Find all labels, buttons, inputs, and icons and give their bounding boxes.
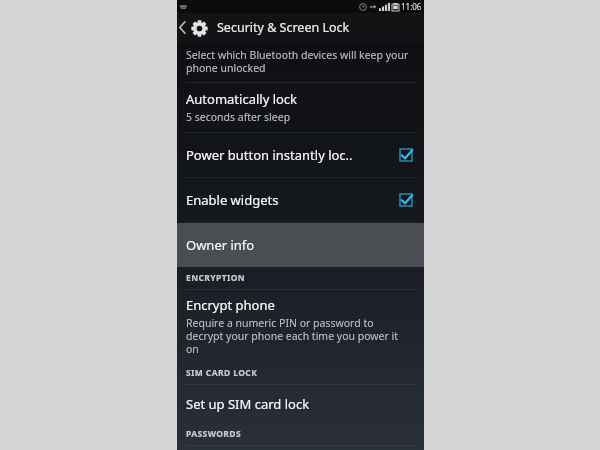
staticText: Require a numeric PIN or password to dec… <box>186 316 408 356</box>
staticText: Encrypt phone <box>186 296 275 314</box>
button[interactable]: Settings <box>188 17 210 39</box>
button[interactable]: Power button instantly loc.. <box>177 133 424 177</box>
staticText: PASSWORDS <box>186 428 242 440</box>
staticText: Security & Screen Lock <box>217 19 350 36</box>
staticText: Power button instantly loc.. <box>186 146 399 164</box>
button[interactable]: Owner info <box>177 223 424 267</box>
button[interactable]: Select which Bluetooth devices will keep… <box>177 42 424 82</box>
staticText: 5 seconds after sleep <box>186 110 291 124</box>
staticText: Owner info <box>186 236 255 254</box>
staticText: Enable widgets <box>186 191 399 209</box>
button[interactable]: Navigate up <box>177 13 188 42</box>
button[interactable]: Enable widgets <box>177 178 424 222</box>
staticText: SIM CARD LOCK <box>186 367 258 379</box>
button[interactable]: Encrypt phone <box>177 290 424 362</box>
button[interactable]: Set up SIM card lock <box>177 385 424 423</box>
staticText: 11:06 <box>401 1 422 12</box>
staticText: Select which Bluetooth devices will keep… <box>186 48 410 75</box>
button[interactable]: Automatically lock <box>177 83 424 132</box>
staticText: Set up SIM card lock <box>186 395 310 413</box>
staticText: Automatically lock <box>186 90 298 108</box>
staticText: ENCRYPTION <box>186 272 246 284</box>
